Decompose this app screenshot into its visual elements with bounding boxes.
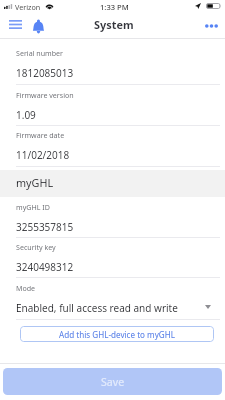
staticText: myGHL — [16, 175, 54, 190]
button[interactable]: Mode — [0, 278, 225, 319]
staticText: 3240498312 — [16, 260, 74, 274]
staticText: System — [94, 17, 134, 32]
button[interactable]: Notifications — [28, 15, 49, 38]
staticText: Serial number — [16, 48, 64, 58]
staticText: 11/02/2018 — [16, 148, 70, 162]
button[interactable]: Firmware version — [0, 85, 225, 126]
staticText: 1:33 PM — [100, 2, 129, 12]
staticText: Security key — [16, 242, 56, 252]
staticText: Enabled, full access read and write — [16, 301, 178, 315]
button[interactable]: Firmware date — [0, 125, 225, 166]
button[interactable]: More options — [196, 15, 222, 38]
button[interactable]: Serial number — [0, 39, 225, 84]
staticText: myGHL ID — [16, 202, 50, 212]
staticText: Firmware date — [16, 130, 65, 140]
button[interactable]: Save — [3, 368, 222, 395]
button[interactable]: Menu — [3, 15, 28, 38]
staticText: 3255357815 — [16, 220, 74, 234]
staticText: Firmware version — [16, 90, 74, 100]
staticText: Verizon — [15, 2, 41, 12]
staticText: Mode — [16, 283, 36, 293]
staticText: Add this GHL-device to myGHL — [59, 329, 175, 340]
staticText: 1.09 — [16, 108, 36, 122]
button[interactable]: myGHL ID — [0, 197, 225, 238]
staticText: 1812085013 — [16, 66, 74, 80]
button[interactable]: Security key — [0, 237, 225, 277]
staticText: Save — [101, 375, 125, 389]
button[interactable]: Add this GHL-device to myGHL — [20, 326, 214, 342]
